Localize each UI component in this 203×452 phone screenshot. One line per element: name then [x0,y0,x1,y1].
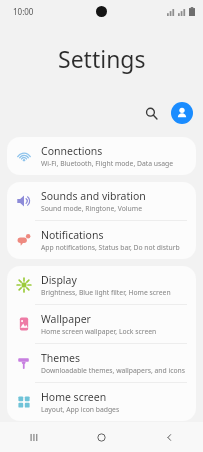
button[interactable]: Connections [7,137,196,175]
button[interactable]: Notifications [7,221,196,259]
button[interactable]: Back [135,422,203,452]
staticText: Home screen [41,390,107,404]
staticText: Brightness, Blue light filter, Home scre… [41,288,171,297]
staticText: Layout, App icon badges [41,405,120,414]
staticText: Home screen wallpaper, Lock screen wallp… [41,327,188,336]
staticText: Display [41,273,77,287]
button[interactable]: Display [7,266,196,304]
button[interactable]: Sounds and vibration [7,182,196,220]
button[interactable]: Recents [0,422,67,452]
button[interactable]: Search [138,100,164,126]
staticText: 10:00 [13,6,34,17]
button[interactable]: Themes [7,344,196,382]
staticText: Notifications [41,228,104,242]
staticText: Sounds and vibration [41,189,146,203]
staticText: App notifications, Status bar, Do not di… [41,243,180,252]
staticText: Sound mode, Ringtone, Volume [41,204,143,213]
button[interactable]: Account [171,102,193,124]
staticText: Connections [41,144,103,158]
button[interactable]: Wallpaper [7,305,196,343]
staticText: Wallpaper [41,312,91,326]
staticText: Settings [58,43,146,74]
staticText: Themes [41,351,81,365]
staticText: Downloadable themes, wallpapers, and ico… [41,366,186,375]
staticText: Wi-Fi, Bluetooth, Flight mode, Data usag… [41,159,174,168]
button[interactable]: Home [67,422,135,452]
button[interactable]: Home screen [7,383,196,421]
